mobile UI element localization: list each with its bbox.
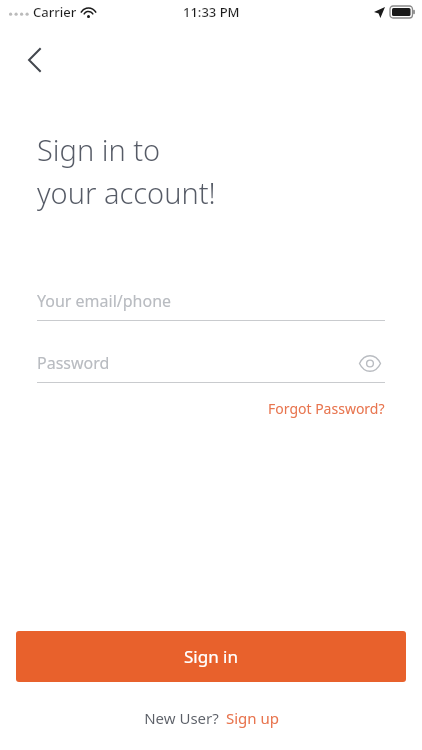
staticText: Your email/phone <box>37 290 172 312</box>
button[interactable]: Password <box>37 344 385 382</box>
staticText: New User? <box>144 708 219 728</box>
button[interactable]: Your email/phone <box>37 282 385 320</box>
staticText: Forgot Password? <box>268 399 385 418</box>
button[interactable]: Sign up <box>226 708 279 728</box>
staticText: 11:33 PM <box>183 3 240 21</box>
button[interactable]: Back <box>12 38 56 82</box>
staticText: Sign in to <box>37 130 161 169</box>
staticText: Password <box>37 352 110 374</box>
staticText: Sign up <box>226 708 279 728</box>
button[interactable]: Sign in <box>16 631 406 682</box>
button[interactable]: Forgot Password? <box>268 395 385 422</box>
staticText: Sign in <box>184 645 238 668</box>
staticText: your account! <box>37 173 216 212</box>
staticText: Carrier <box>33 3 77 21</box>
button[interactable]: Show password <box>355 348 385 378</box>
